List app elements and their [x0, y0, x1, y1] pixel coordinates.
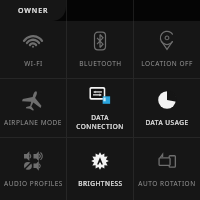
button[interactable]: AUDIO PROFILES [0, 138, 66, 200]
button[interactable]: LOCATION OFF [134, 21, 200, 78]
button[interactable]: DATA CONNECTION [67, 79, 133, 137]
button[interactable]: WI-FI [0, 21, 66, 78]
staticText: DATA CONNECTION [76, 113, 124, 131]
staticText: BRIGHTNESS [78, 179, 123, 188]
staticText: WI-FI [24, 59, 43, 68]
button[interactable]: DATA USAGE [134, 79, 200, 137]
staticText: AUTO ROTATION [138, 179, 196, 188]
staticText: AUDIO PROFILES [4, 179, 63, 188]
staticText: BLUETOOTH [79, 59, 122, 68]
staticText: AIRPLANE MODE [4, 118, 62, 127]
staticText: OWNER [18, 6, 49, 16]
button[interactable]: AUTO ROTATION [134, 138, 200, 200]
staticText: DATA USAGE [145, 118, 189, 127]
staticText: LOCATION OFF [141, 59, 193, 68]
button[interactable]: OWNER [0, 0, 66, 21]
button[interactable]: BLUETOOTH [67, 21, 133, 78]
button[interactable]: BRIGHTNESS [67, 138, 133, 200]
button[interactable]: AIRPLANE MODE [0, 79, 66, 137]
